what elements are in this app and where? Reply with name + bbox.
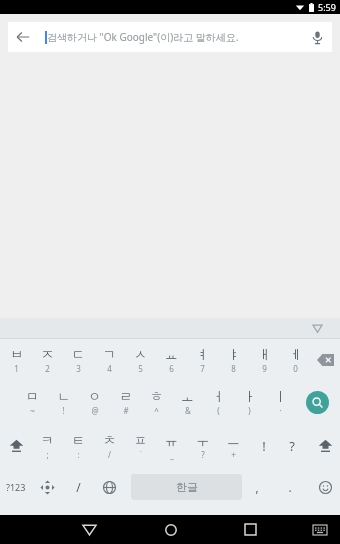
- button[interactable]: ㅎ: [141, 381, 171, 423]
- button[interactable]: ㄱ: [94, 339, 124, 381]
- button[interactable]: ㅌ: [63, 423, 93, 468]
- staticText: ㅑ: [227, 346, 240, 362]
- staticText: ㅣ: [274, 388, 287, 404]
- staticText: ㅊ: [103, 432, 116, 448]
- staticText: 2: [45, 363, 50, 374]
- staticText: .: [288, 479, 292, 495]
- button[interactable]: ㅋ: [32, 423, 62, 468]
- staticText: ㅇ: [88, 388, 101, 404]
- button[interactable]: ㄹ: [110, 381, 140, 423]
- button[interactable]: .: [275, 468, 305, 506]
- staticText: ㄴ: [57, 388, 70, 404]
- staticText: ㅎ: [150, 388, 163, 404]
- button[interactable]: ㅡ: [218, 423, 248, 468]
- button[interactable]: ㅏ: [234, 381, 264, 423]
- button[interactable]: Voice search: [302, 22, 332, 52]
- staticText: ㅅ: [134, 346, 147, 362]
- button[interactable]: ㄷ: [63, 339, 93, 381]
- staticText: :: [77, 449, 80, 460]
- staticText: &: [185, 405, 191, 416]
- button[interactable]: ?: [277, 423, 307, 468]
- button[interactable]: ㅕ: [187, 339, 217, 381]
- button[interactable]: Back: [8, 22, 332, 52]
- staticText: !: [62, 405, 65, 416]
- button[interactable]: Search: [302, 381, 332, 423]
- button[interactable]: ㅑ: [218, 339, 248, 381]
- button[interactable]: ㅣ: [265, 381, 295, 423]
- staticText: 6: [169, 363, 174, 374]
- button[interactable]: !: [249, 423, 279, 468]
- button[interactable]: Show suggestions: [308, 319, 326, 337]
- staticText: ㄱ: [103, 346, 116, 362]
- staticText: 1: [14, 363, 19, 374]
- staticText: ㅏ: [243, 388, 256, 404]
- staticText: ?: [201, 449, 205, 460]
- button[interactable]: Back: [75, 515, 104, 544]
- staticText: 9: [262, 363, 267, 374]
- button[interactable]: Hide keyboard: [308, 518, 332, 542]
- button[interactable]: /: [63, 468, 93, 506]
- staticText: !: [262, 437, 266, 455]
- button[interactable]: Shift: [310, 423, 340, 468]
- button[interactable]: ㅈ: [32, 339, 62, 381]
- button[interactable]: ㅓ: [203, 381, 233, 423]
- staticText: ^: [154, 405, 159, 416]
- button[interactable]: ?123: [1, 468, 31, 506]
- button[interactable]: ㅍ: [125, 423, 155, 468]
- button[interactable]: ㅗ: [172, 381, 202, 423]
- button[interactable]: Move cursor: [32, 468, 62, 506]
- staticText: 4: [107, 363, 112, 374]
- button[interactable]: ㄴ: [48, 381, 78, 423]
- staticText: ㄹ: [119, 388, 132, 404]
- staticText: 8: [231, 363, 236, 374]
- staticText: /: [76, 479, 81, 495]
- staticText: ˙: [140, 449, 142, 460]
- button[interactable]: ㅜ: [187, 423, 217, 468]
- button[interactable]: ㅔ: [280, 339, 310, 381]
- staticText: ,: [255, 479, 259, 495]
- button[interactable]: ㅠ: [156, 423, 186, 468]
- button[interactable]: ㅂ: [1, 339, 31, 381]
- staticText: 7: [200, 363, 205, 374]
- staticText: /: [108, 449, 111, 460]
- staticText: ㅍ: [134, 432, 147, 448]
- staticText: ㅈ: [41, 346, 54, 362]
- button[interactable]: ㅁ: [17, 381, 47, 423]
- staticText: _: [170, 449, 174, 460]
- staticText: ;: [46, 449, 49, 460]
- staticText: ?: [289, 437, 295, 455]
- button[interactable]: Emoji: [310, 468, 340, 506]
- button[interactable]: Recents: [236, 515, 265, 544]
- staticText: ㅠ: [165, 432, 178, 448]
- button[interactable]: Shift: [1, 423, 31, 468]
- staticText: ㅓ: [212, 388, 225, 404]
- staticText: 검색하거나 "Ok Google"(이)라고 말하세요.: [47, 30, 239, 44]
- staticText: 5:59: [318, 1, 336, 13]
- staticText: ·: [279, 405, 282, 416]
- button[interactable]: Backspace: [310, 339, 340, 381]
- button[interactable]: Change keyboard language: [94, 468, 124, 506]
- staticText: 5: [138, 363, 143, 374]
- button[interactable]: ,: [242, 468, 272, 506]
- staticText: ?123: [6, 481, 26, 493]
- staticText: ㅋ: [41, 432, 54, 448]
- button[interactable]: 한글: [131, 474, 242, 500]
- button[interactable]: ㅛ: [156, 339, 186, 381]
- staticText: ㅡ: [227, 432, 240, 448]
- staticText: 0: [293, 363, 298, 374]
- button[interactable]: ㅇ: [79, 381, 109, 423]
- staticText: ): [248, 405, 251, 416]
- button[interactable]: ㅅ: [125, 339, 155, 381]
- button[interactable]: Back: [8, 22, 38, 52]
- staticText: (: [217, 405, 220, 416]
- button[interactable]: Home: [156, 515, 185, 544]
- staticText: +: [231, 449, 236, 460]
- staticText: ㅕ: [196, 346, 209, 362]
- button[interactable]: ㅊ: [94, 423, 124, 468]
- button[interactable]: ㅐ: [249, 339, 279, 381]
- staticText: ㅛ: [165, 346, 178, 362]
- staticText: @: [91, 405, 99, 416]
- staticText: ㄷ: [72, 346, 85, 362]
- staticText: 한글: [176, 480, 198, 494]
- staticText: #: [123, 405, 129, 416]
